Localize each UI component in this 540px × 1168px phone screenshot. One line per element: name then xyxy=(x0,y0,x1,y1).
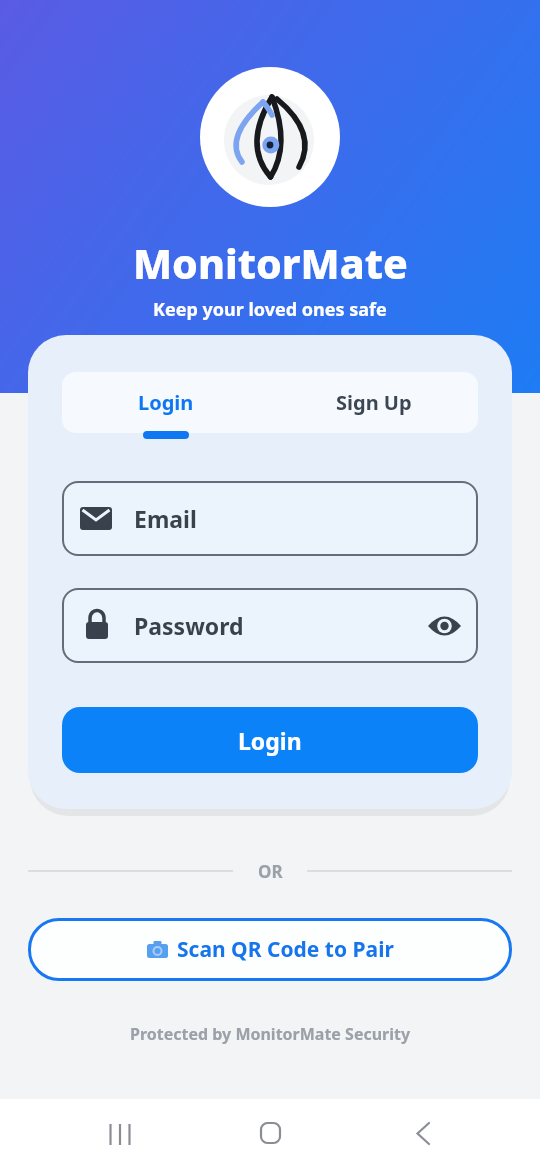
button[interactable]: Login xyxy=(62,707,478,773)
button[interactable] xyxy=(428,615,461,637)
staticText: Protected by MonitorMate Security xyxy=(130,1023,411,1045)
button[interactable] xyxy=(180,1099,360,1168)
staticText: Password xyxy=(134,610,244,641)
button[interactable]: Scan QR Code to Pair xyxy=(28,918,512,981)
button[interactable]: Email xyxy=(62,481,478,556)
staticText: OR xyxy=(258,860,283,883)
staticText: Sign Up xyxy=(336,389,412,416)
button[interactable]: Sign Up xyxy=(270,372,478,433)
staticText: Login xyxy=(138,389,194,416)
button[interactable] xyxy=(360,1099,540,1168)
staticText: Scan QR Code to Pair xyxy=(177,935,394,964)
staticText: Email xyxy=(134,503,197,534)
button[interactable] xyxy=(0,1099,180,1168)
staticText: MonitorMate xyxy=(133,235,408,291)
staticText: Keep your loved ones safe xyxy=(153,297,387,322)
button[interactable]: Login xyxy=(62,372,270,433)
button[interactable]: Password xyxy=(62,588,478,663)
staticText: Login xyxy=(238,725,302,756)
